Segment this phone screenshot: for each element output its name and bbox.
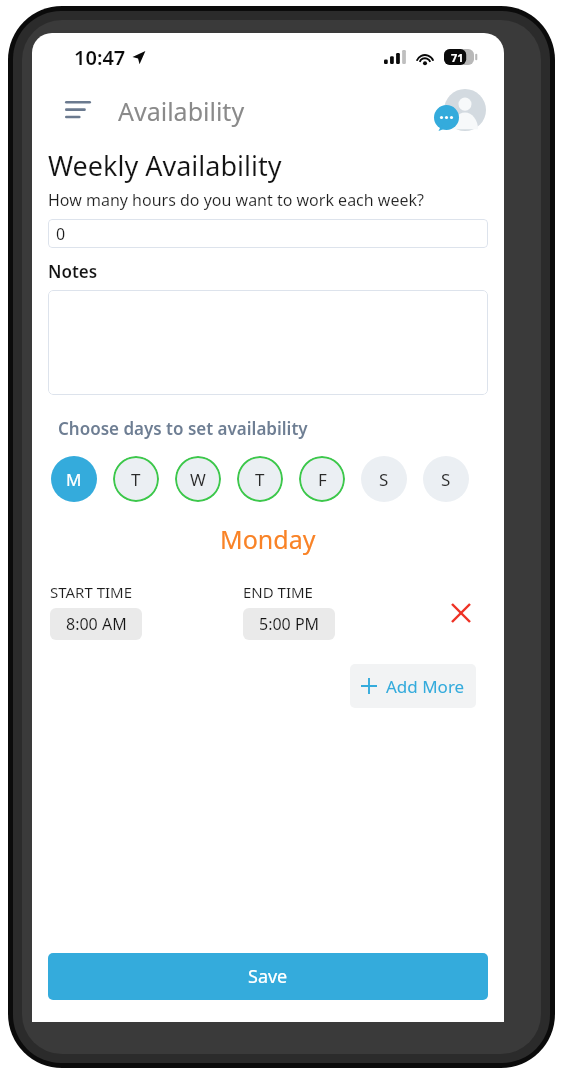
- staticText: Notes: [48, 260, 98, 283]
- button[interactable]: Add More: [350, 664, 476, 708]
- button[interactable]: F: [299, 456, 345, 502]
- staticText: 10:47: [74, 44, 126, 71]
- staticText: F: [318, 468, 327, 491]
- staticText: T: [131, 468, 141, 491]
- staticText: M: [66, 468, 82, 491]
- staticText: 5:00 PM: [259, 613, 320, 635]
- staticText: Weekly Availability: [48, 147, 282, 184]
- staticText: W: [190, 468, 206, 491]
- button[interactable]: Open navigation menu: [54, 86, 102, 134]
- staticText: Availability: [118, 94, 245, 128]
- button[interactable]: [48, 290, 488, 395]
- button[interactable]: 8:00 AM: [50, 608, 142, 640]
- staticText: START TIME: [50, 582, 133, 602]
- staticText: 0: [56, 223, 66, 245]
- button[interactable]: Remove time range: [442, 594, 480, 632]
- staticText: Add More: [386, 675, 465, 698]
- staticText: 71: [451, 50, 464, 65]
- button[interactable]: 5:00 PM: [243, 608, 335, 640]
- button[interactable]: T: [237, 456, 283, 502]
- button[interactable]: S: [361, 456, 407, 502]
- staticText: Monday: [220, 522, 316, 556]
- button[interactable]: 0: [48, 219, 488, 248]
- staticText: END TIME: [243, 582, 313, 602]
- staticText: S: [441, 468, 451, 491]
- button[interactable]: T: [113, 456, 159, 502]
- button[interactable]: Save: [48, 953, 488, 1000]
- button[interactable]: M: [51, 456, 97, 502]
- button[interactable]: S: [423, 456, 469, 502]
- staticText: 8:00 AM: [66, 613, 127, 635]
- staticText: How many hours do you want to work each …: [48, 189, 424, 211]
- staticText: T: [255, 468, 265, 491]
- staticText: Save: [248, 964, 288, 989]
- button[interactable]: Profile and messages: [434, 84, 486, 136]
- staticText: Choose days to set availability: [58, 417, 308, 440]
- button[interactable]: W: [175, 456, 221, 502]
- staticText: S: [379, 468, 389, 491]
